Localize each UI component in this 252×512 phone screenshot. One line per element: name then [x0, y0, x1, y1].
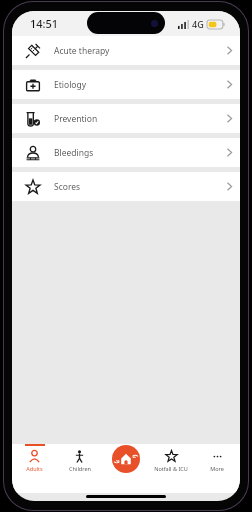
button[interactable]: More — [194, 444, 240, 472]
staticText: 14:51 — [30, 16, 59, 31]
staticText: 4G — [192, 18, 204, 30]
button[interactable]: Prevention — [12, 104, 240, 133]
button[interactable]: Etiology — [12, 70, 240, 99]
staticText: More — [210, 465, 224, 472]
button[interactable]: Adults — [12, 444, 57, 472]
staticText: Prevention — [54, 113, 218, 125]
staticText: Adults — [26, 465, 43, 472]
staticText: Scores — [54, 181, 218, 193]
staticText: Acute therapy — [54, 45, 218, 57]
staticText: Etiology — [54, 79, 218, 91]
button[interactable]: Children — [57, 444, 102, 472]
staticText: Notfall & ICU — [154, 465, 188, 472]
button[interactable]: Notfall & ICU — [148, 444, 194, 472]
staticText: Bleedings — [54, 147, 218, 159]
staticText: Children — [69, 465, 91, 472]
button[interactable]: Acute therapy — [12, 36, 240, 65]
button[interactable]: Scores — [12, 172, 240, 201]
button[interactable]: Bleedings — [12, 138, 240, 167]
button[interactable]: Emergency — [112, 445, 140, 473]
